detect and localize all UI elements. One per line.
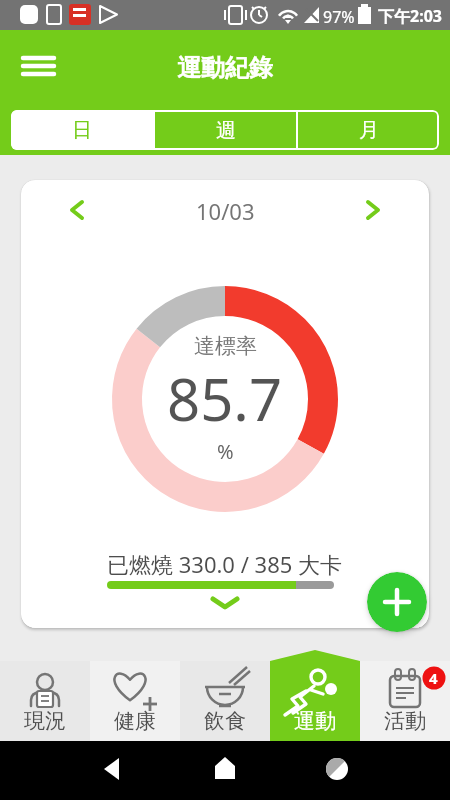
staticText: 日 [72, 118, 92, 143]
staticText: 達標率 [194, 333, 257, 359]
staticText: 運動 [294, 708, 336, 734]
staticText: 4 [429, 668, 438, 688]
staticText: 85.7 [167, 359, 283, 438]
staticText: 飲食 [204, 708, 246, 734]
staticText: 健康 [114, 708, 156, 734]
staticText: 97% [323, 6, 355, 28]
staticText: 月 [359, 118, 379, 143]
staticText: 10/03 [196, 196, 255, 224]
staticText: 下午2:03 [378, 5, 442, 27]
staticText: 週 [216, 118, 236, 143]
staticText: 現況 [24, 708, 66, 734]
staticText: 運動紀錄 [177, 53, 273, 83]
staticText: % [217, 438, 234, 465]
staticText: 活動 [384, 708, 426, 734]
staticText: 已燃燒 330.0 / 385 大卡 [107, 549, 343, 579]
